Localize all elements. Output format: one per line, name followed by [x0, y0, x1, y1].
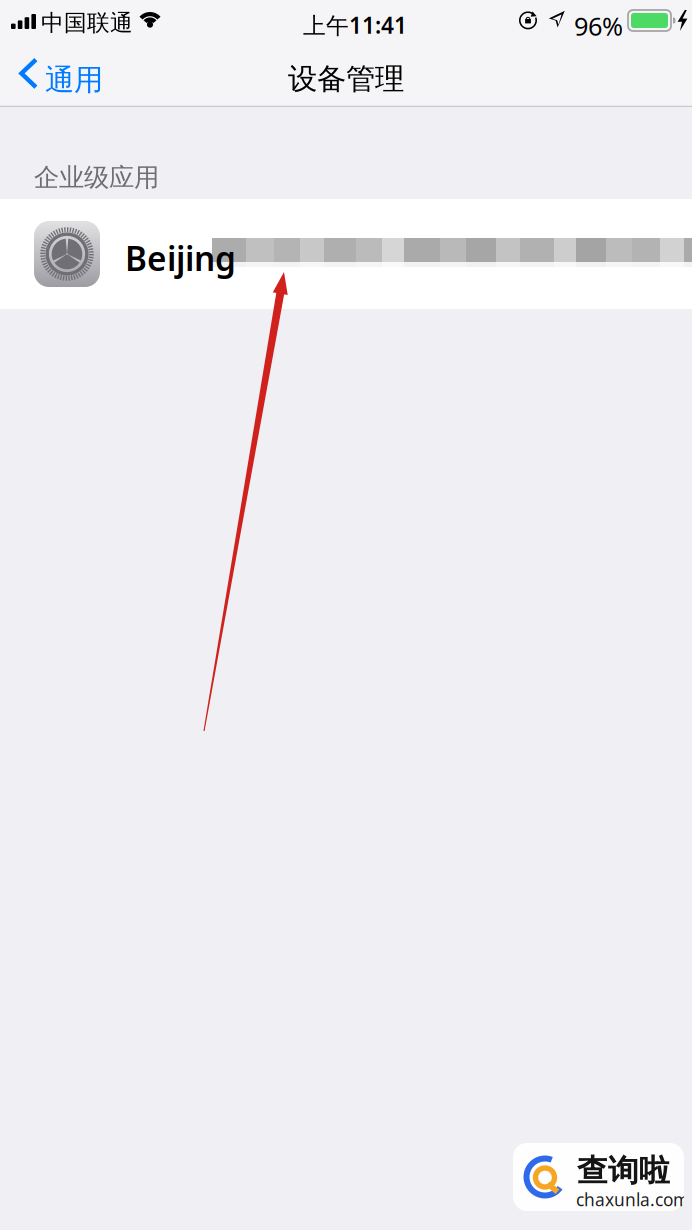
staticText: 上午11:41 — [303, 10, 407, 40]
staticText: 企业级应用 — [34, 162, 159, 193]
staticText: 中国联通 — [41, 9, 133, 37]
staticText: 96% — [574, 9, 623, 43]
staticText: 查询啦 — [577, 1152, 670, 1190]
button[interactable]: Beijing — [0, 199, 692, 309]
staticText: 设备管理 — [288, 61, 404, 97]
staticText: Beijing — [125, 236, 236, 280]
staticText: 通用 — [45, 62, 103, 98]
button[interactable]: 通用 — [0, 42, 130, 107]
staticText: chaxunla.com — [576, 1188, 689, 1211]
